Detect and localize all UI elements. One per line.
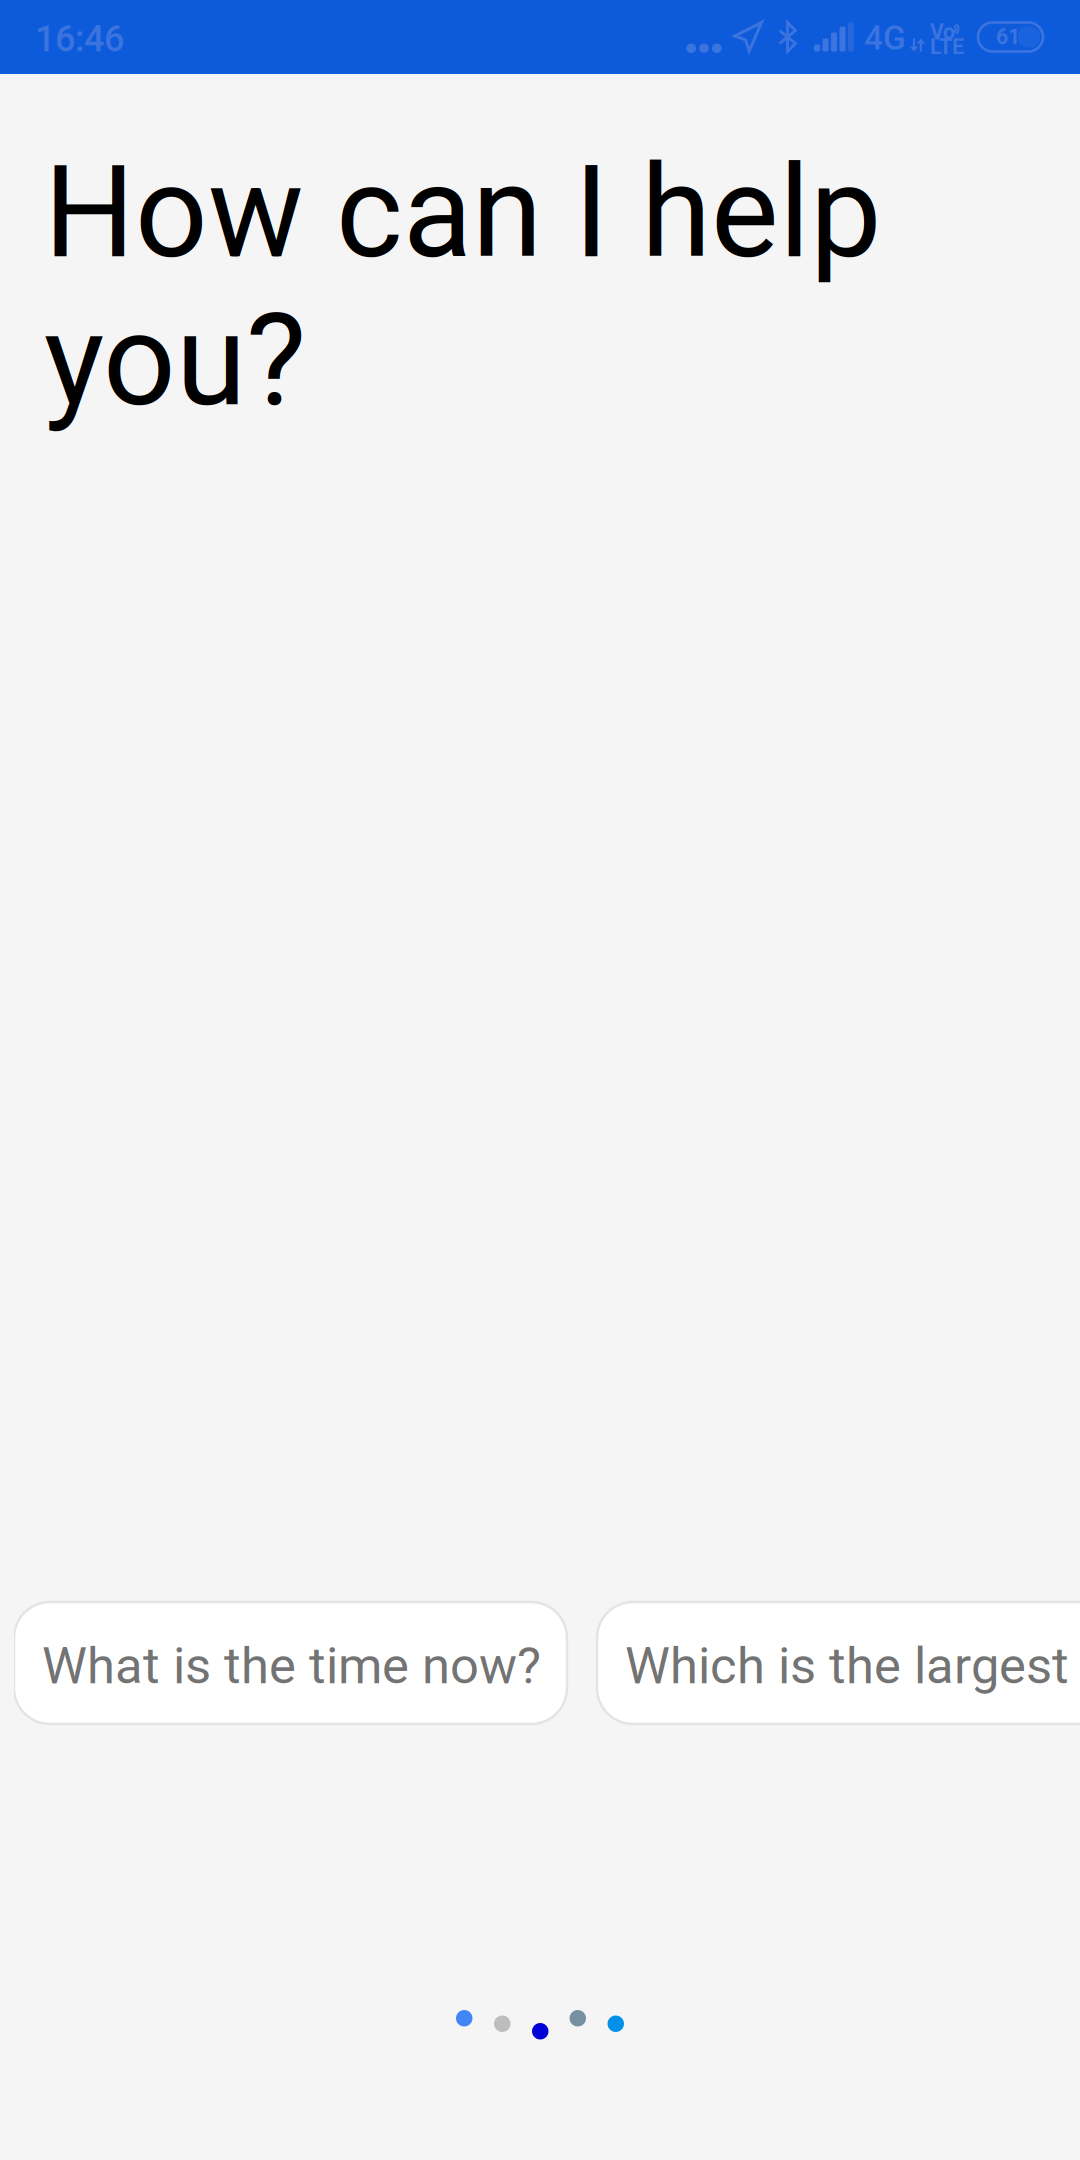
staticText: Vo	[930, 19, 955, 44]
staticText: How can I help	[44, 138, 882, 287]
staticText: Which is the largest country?	[625, 1636, 1080, 1696]
staticText: What is the time now?	[42, 1636, 541, 1696]
staticText: you?	[44, 286, 306, 435]
staticText: 4G	[864, 18, 906, 58]
staticText: LTE	[930, 34, 964, 59]
button[interactable]: What is the time now?	[14, 1602, 567, 1724]
staticText: 16:46	[35, 18, 124, 60]
staticText: 61	[996, 24, 1020, 49]
button[interactable]: Which is the largest country?	[597, 1602, 1080, 1724]
